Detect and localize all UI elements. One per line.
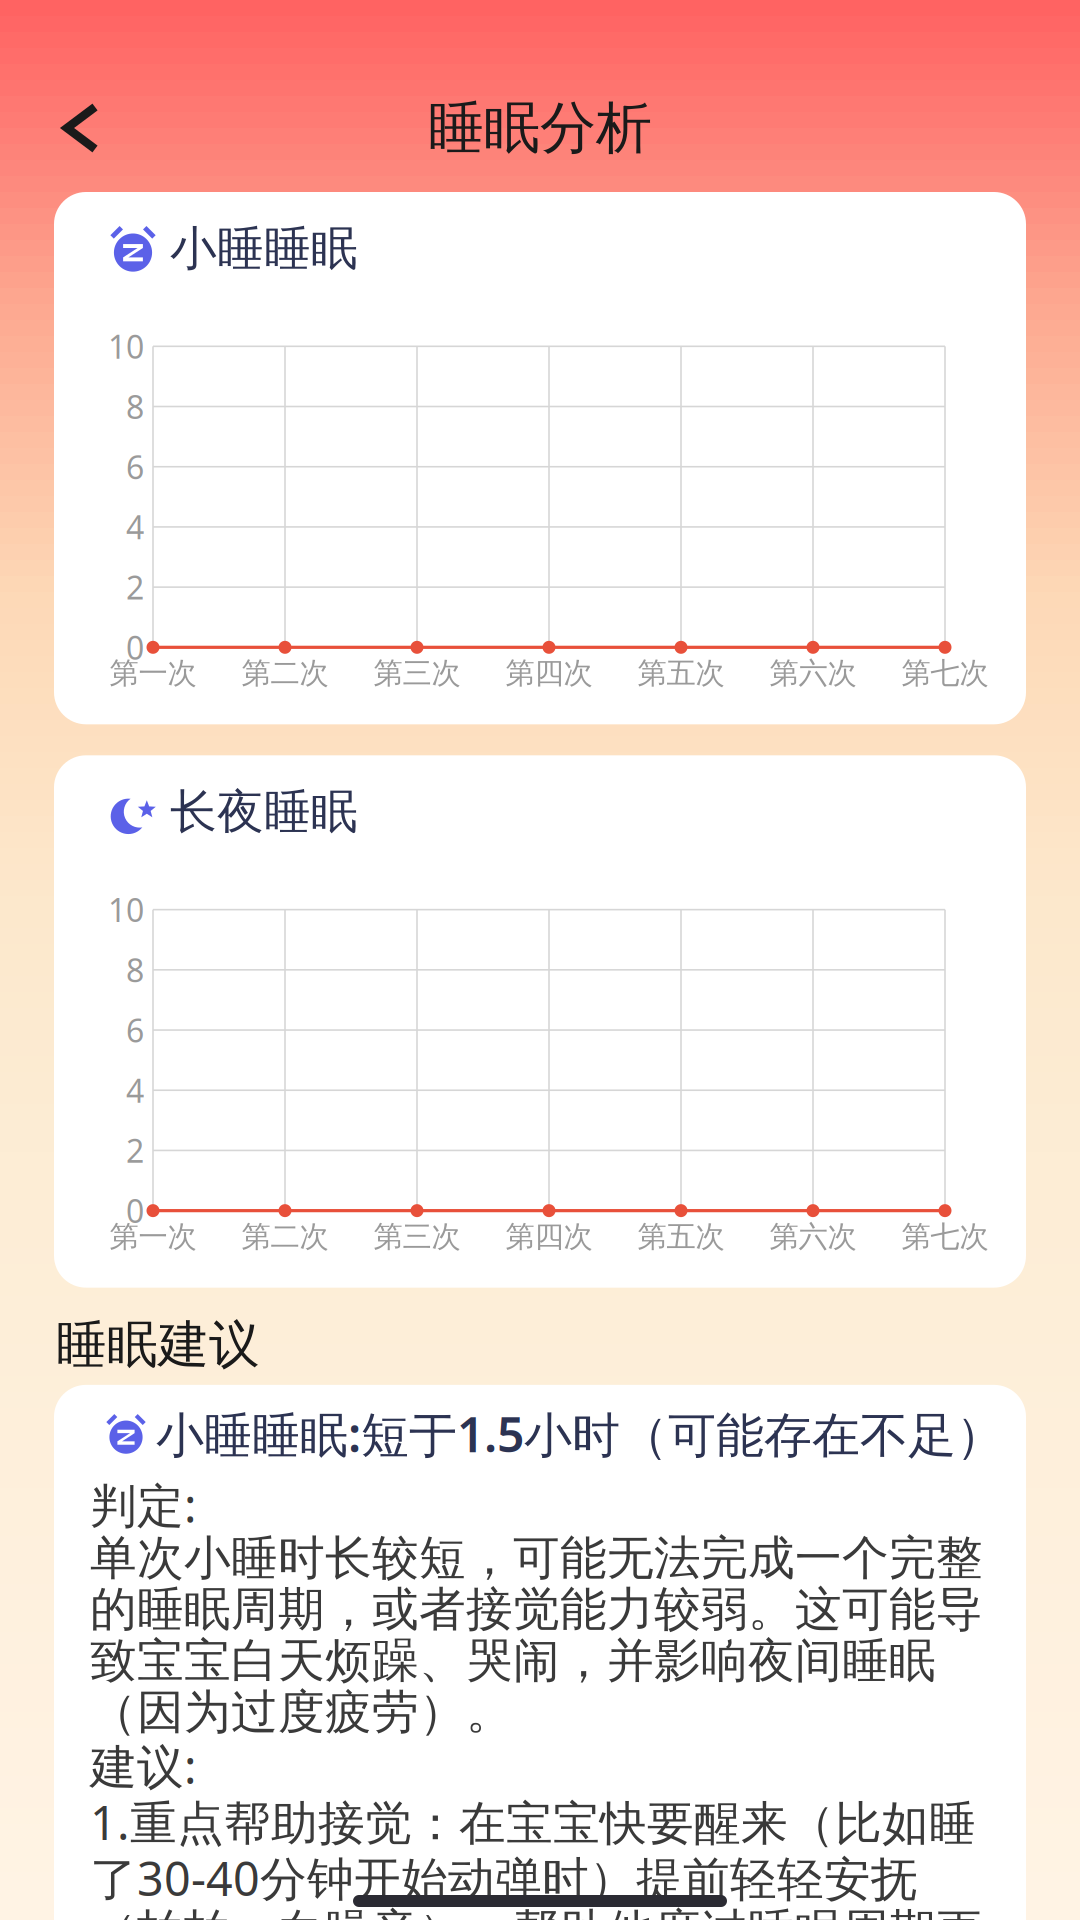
staticText: 小睡睡眠:短于1.5小时（可能存在不足） <box>156 1402 1004 1466</box>
staticText: 10 <box>108 888 144 931</box>
staticText: 2 <box>126 566 144 608</box>
staticText: 第四次 <box>505 1219 592 1255</box>
staticText: 4 <box>126 506 144 548</box>
staticText: 第四次 <box>505 655 592 691</box>
staticText: 小睡睡眠 <box>170 220 358 277</box>
staticText: 10 <box>108 325 144 368</box>
staticText: 8 <box>126 385 144 428</box>
staticText: 第五次 <box>637 1219 724 1255</box>
staticText: 8 <box>126 949 144 991</box>
staticText: 0 <box>126 1189 144 1232</box>
staticText: 第六次 <box>769 1219 856 1255</box>
staticText: 第一次 <box>109 1219 196 1255</box>
staticText: 第六次 <box>769 655 856 691</box>
staticText: 6 <box>126 445 144 488</box>
staticText: 判定: 单次小睡时长较短，可能无法完成一个完整的睡眠周期，或者接觉能力较弱。这可… <box>90 1474 983 1920</box>
staticText: 睡眠分析 <box>428 94 652 162</box>
staticText: 睡眠建议 <box>56 1314 260 1376</box>
staticText: 2 <box>126 1129 144 1172</box>
button[interactable]: Back <box>0 85 123 171</box>
staticText: 4 <box>126 1069 144 1111</box>
staticText: 第七次 <box>901 655 988 691</box>
staticText: 6 <box>126 1009 144 1051</box>
staticText: 第五次 <box>637 655 724 691</box>
staticText: 第七次 <box>901 1219 988 1255</box>
staticText: 0 <box>126 626 144 669</box>
staticText: 第三次 <box>373 655 460 691</box>
staticText: 第一次 <box>109 655 196 691</box>
staticText: 第二次 <box>241 1219 328 1255</box>
staticText: 长夜睡眠 <box>170 783 358 841</box>
staticText: 第二次 <box>241 655 328 691</box>
staticText: 第三次 <box>373 1219 460 1255</box>
